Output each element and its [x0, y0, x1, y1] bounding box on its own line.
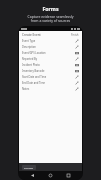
button[interactable]: Start Date and Time: [19, 74, 82, 80]
staticText: Inventory Barcode: [22, 69, 75, 73]
staticText: Forms: [42, 5, 59, 12]
other: Edit Event Type: [75, 39, 79, 43]
staticText: End Date and Time: [22, 81, 75, 85]
staticText: CANCEL: [24, 166, 34, 169]
staticText: Description: [22, 45, 75, 49]
staticText: Capture evidence seamlessly from a varie…: [8, 14, 93, 23]
button[interactable]: Notes: [19, 86, 82, 92]
other: Capture photo: [75, 51, 79, 55]
staticText: Incident Photo: [22, 63, 75, 67]
button[interactable]: CANCEL: [22, 165, 36, 170]
staticText: Notes: [22, 87, 75, 91]
other: Capture photo: [75, 63, 79, 67]
other: Edit Reported By: [75, 57, 79, 61]
button[interactable]: Back: [28, 171, 37, 180]
staticText: Reported By: [22, 57, 75, 61]
staticText: Finish: [71, 33, 79, 37]
button[interactable]: Finish: [71, 33, 79, 37]
other: Edit Notes: [75, 87, 79, 91]
button[interactable]: Event/GPS Location: [19, 50, 82, 56]
other: Edit Description: [75, 45, 79, 49]
button[interactable]: End Date and Time: [19, 80, 82, 86]
button[interactable]: Incident Photo: [19, 62, 82, 68]
staticText: Create Event: [22, 33, 71, 37]
staticText: Event/GPS Location: [22, 51, 75, 55]
button[interactable]: Recents: [64, 171, 73, 180]
staticText: Start Date and Time: [22, 75, 75, 79]
other: Edit Start Date and Time: [75, 75, 79, 79]
button[interactable]: Event Type: [19, 38, 82, 44]
other: Edit End Date and Time: [75, 81, 79, 85]
button[interactable]: Description: [19, 44, 82, 50]
other: Capture photo: [75, 69, 79, 73]
button[interactable]: Reported By: [19, 56, 82, 62]
button[interactable]: Home: [46, 171, 55, 180]
button[interactable]: Inventory Barcode: [19, 68, 82, 74]
staticText: Event Type: [22, 39, 75, 43]
